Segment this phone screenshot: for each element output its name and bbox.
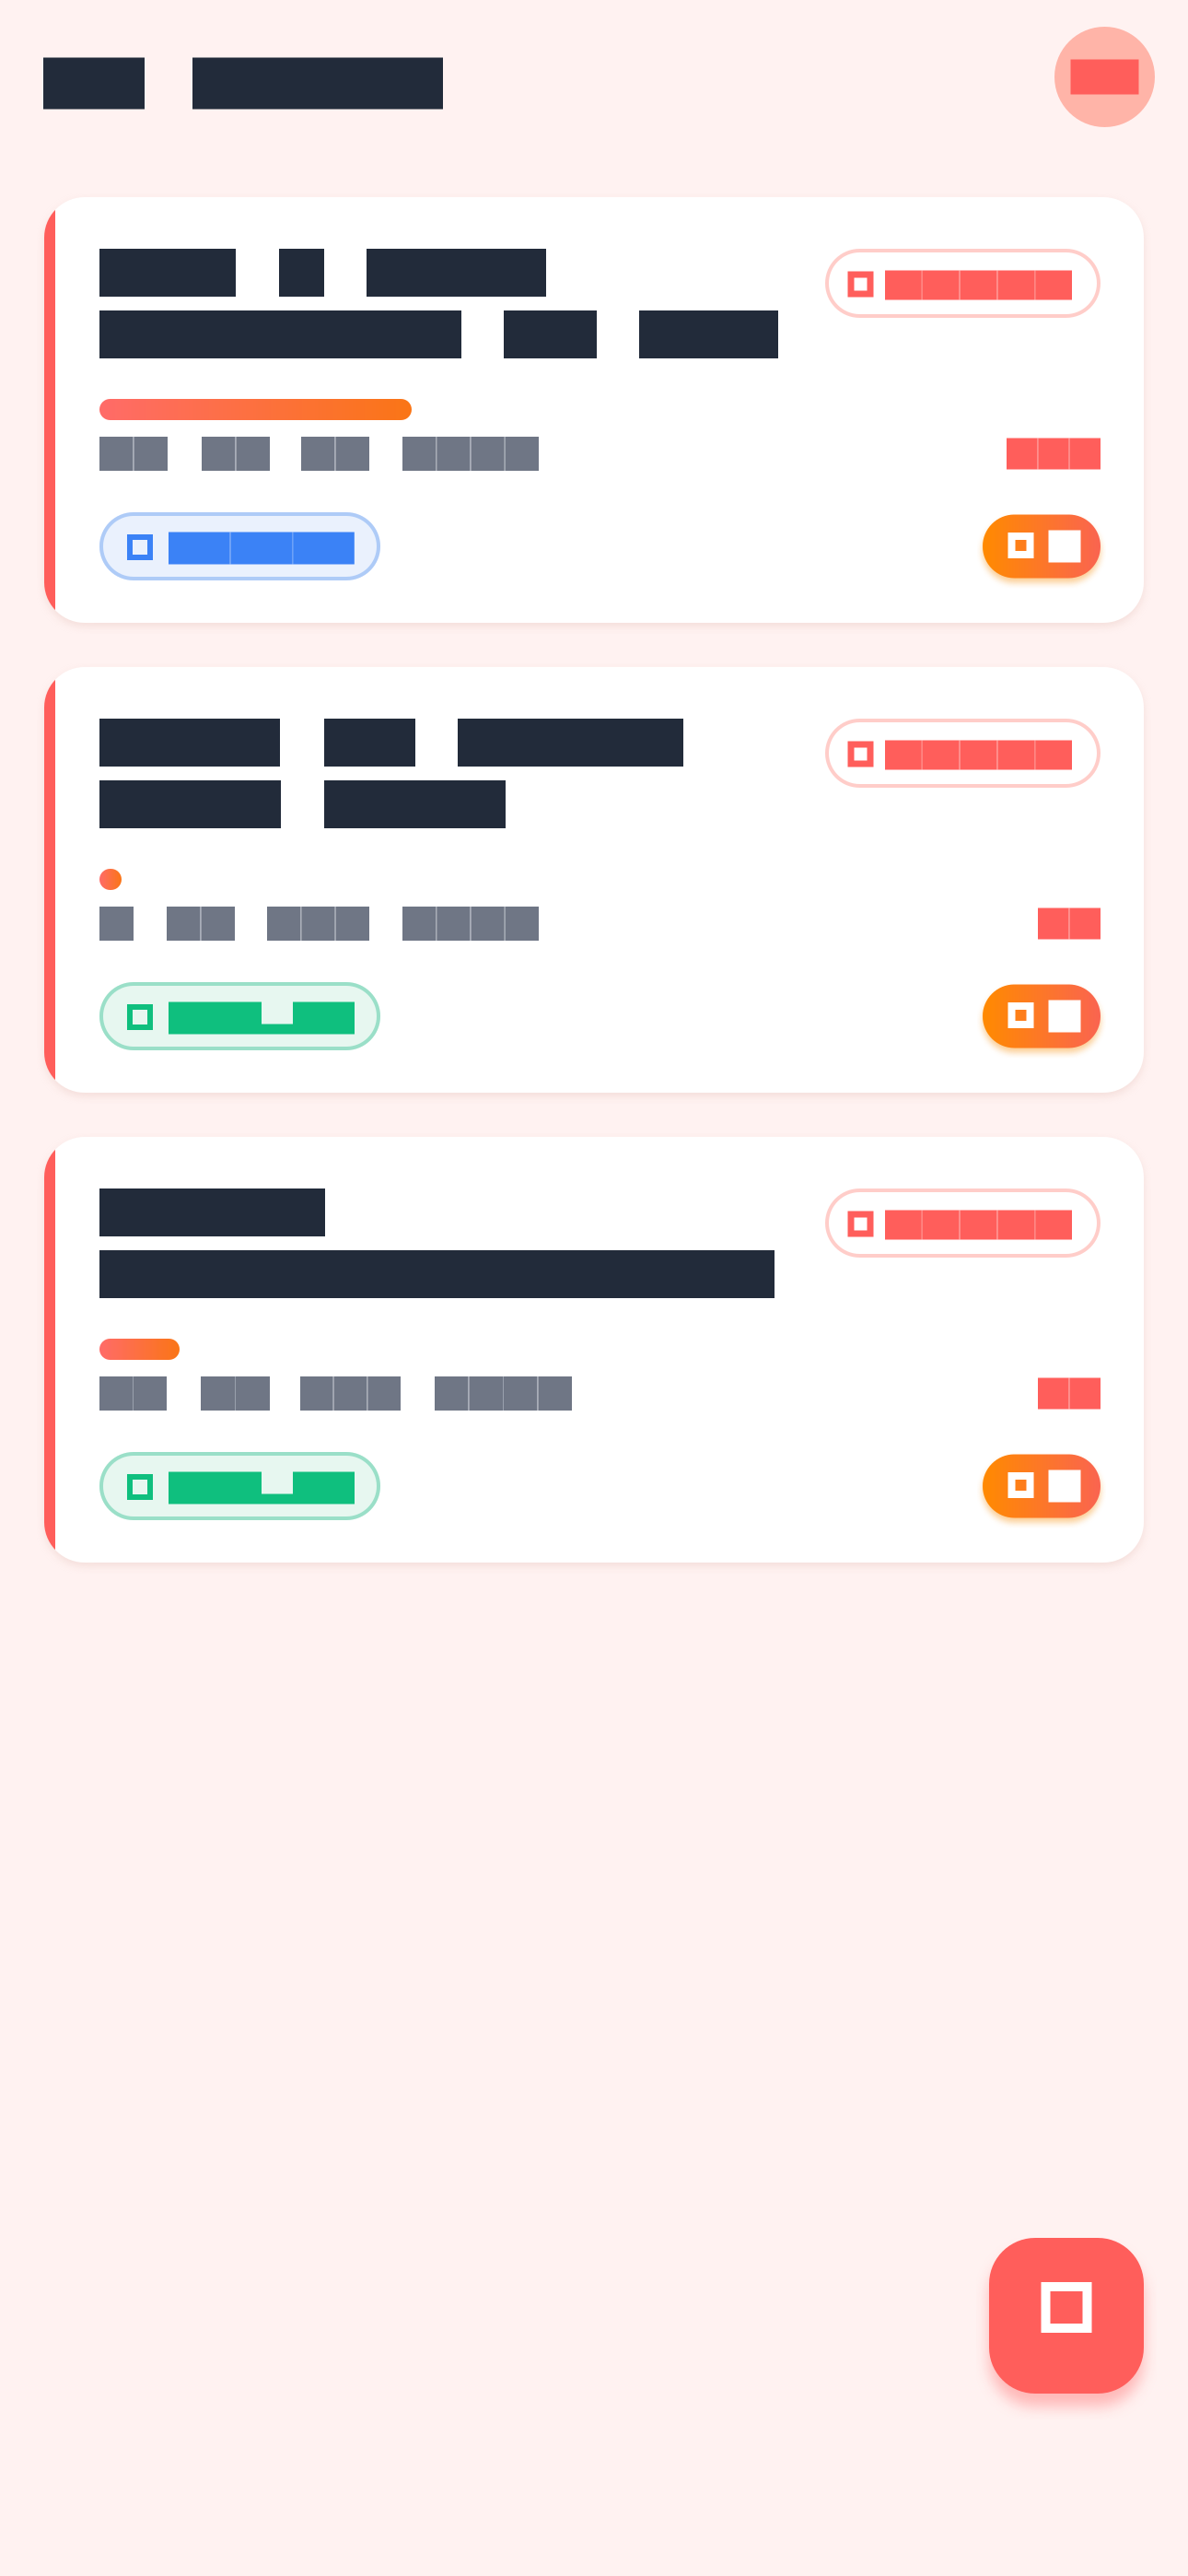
button[interactable]: Status — [825, 249, 1101, 318]
button[interactable]: Profile — [1054, 27, 1155, 127]
button[interactable]: Start timer — [983, 984, 1101, 1048]
button[interactable]: Tag — [99, 1452, 380, 1520]
button[interactable]: Start timer — [983, 515, 1101, 578]
button[interactable]: Status — [825, 1188, 1101, 1258]
button[interactable]: Status — [825, 719, 1101, 788]
button[interactable]: Tag — [99, 512, 380, 580]
button[interactable]: Start timer — [983, 1454, 1101, 1518]
button[interactable]: Add task — [989, 2238, 1144, 2394]
button[interactable]: Tag — [99, 982, 380, 1050]
